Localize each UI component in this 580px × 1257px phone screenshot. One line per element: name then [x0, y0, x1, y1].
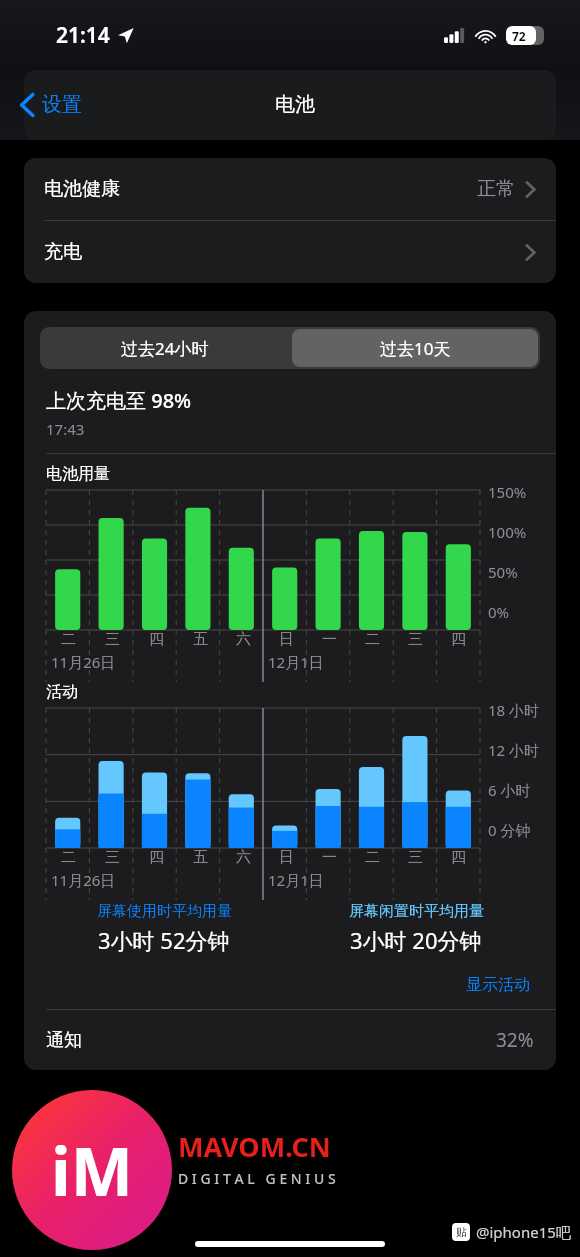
- button[interactable]: 设置: [12, 86, 90, 123]
- staticText: 3小时 52分钟: [98, 925, 230, 955]
- staticText: 五: [193, 848, 208, 867]
- staticText: 18 小时: [488, 700, 540, 720]
- staticText: 二: [61, 848, 76, 867]
- staticText: @iphone15吧: [476, 1222, 571, 1242]
- staticText: 三: [408, 630, 423, 649]
- button[interactable]: 过去24小时: [40, 327, 290, 369]
- staticText: 50%: [488, 562, 518, 582]
- button[interactable]: 通知: [24, 1010, 556, 1070]
- staticText: 日: [279, 630, 294, 649]
- staticText: 四: [451, 848, 466, 867]
- staticText: 12 小时: [488, 740, 540, 760]
- staticText: 二: [365, 630, 380, 649]
- staticText: 屏幕使用时平均用量: [97, 902, 232, 921]
- staticText: 12月1日: [268, 652, 324, 672]
- staticText: 150%: [488, 482, 527, 502]
- staticText: 正常: [477, 177, 515, 201]
- staticText: 一: [322, 848, 337, 867]
- staticText: D I G I T A L G E N I U S: [178, 1169, 336, 1188]
- other: More: [525, 180, 536, 199]
- staticText: 电池: [275, 92, 315, 117]
- staticText: 100%: [488, 522, 527, 542]
- staticText: 12月1日: [268, 870, 324, 890]
- staticText: 二: [61, 630, 76, 649]
- button[interactable]: 过去10天: [292, 329, 538, 367]
- staticText: 72: [512, 28, 526, 44]
- staticText: MAVOM.CN: [178, 1128, 331, 1165]
- staticText: 四: [149, 848, 164, 867]
- button[interactable]: 显示活动: [462, 971, 534, 999]
- staticText: 32%: [496, 1027, 534, 1053]
- staticText: 屏幕闲置时平均用量: [349, 902, 484, 921]
- staticText: 0 分钟: [488, 820, 531, 840]
- staticText: 四: [149, 630, 164, 649]
- staticText: 六: [236, 630, 251, 649]
- staticText: 贴: [456, 1225, 467, 1239]
- staticText: 过去10天: [380, 337, 451, 360]
- staticText: 一: [322, 630, 337, 649]
- staticText: 充电: [44, 240, 82, 264]
- staticText: 三: [408, 848, 423, 867]
- staticText: 四: [451, 630, 466, 649]
- staticText: 电池用量: [46, 464, 110, 484]
- staticText: 过去24小时: [121, 337, 209, 360]
- staticText: 17:43: [46, 419, 85, 439]
- button[interactable]: 充电: [24, 221, 556, 283]
- staticText: 活动: [46, 682, 78, 702]
- staticText: 11月26日: [51, 652, 116, 672]
- staticText: 3小时 20分钟: [350, 925, 482, 955]
- staticText: 三: [105, 848, 120, 867]
- staticText: 二: [365, 848, 380, 867]
- staticText: 设置: [42, 92, 82, 117]
- staticText: 通知: [46, 1029, 82, 1052]
- staticText: 电池健康: [44, 177, 120, 201]
- other: More: [525, 243, 536, 262]
- button[interactable]: 电池健康: [24, 158, 556, 220]
- staticText: 上次充电至 98%: [46, 387, 192, 414]
- staticText: 五: [193, 630, 208, 649]
- staticText: 六: [236, 848, 251, 867]
- staticText: 0%: [488, 602, 510, 622]
- staticText: 11月26日: [51, 870, 116, 890]
- staticText: 三: [105, 630, 120, 649]
- staticText: 21:14: [56, 21, 110, 50]
- staticText: iM: [51, 1125, 133, 1215]
- staticText: 日: [279, 848, 294, 867]
- staticText: 6 小时: [488, 780, 531, 800]
